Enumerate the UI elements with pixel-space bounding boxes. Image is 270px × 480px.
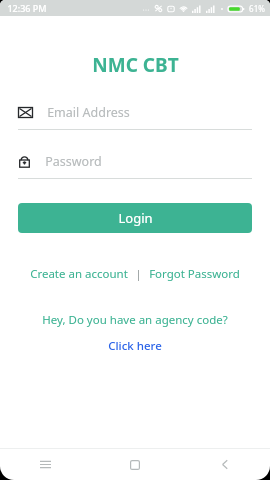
button[interactable]: Forgot Password (146, 264, 243, 284)
staticText: Create an account (30, 266, 128, 282)
staticText: 61% (249, 3, 265, 14)
staticText: | (135, 266, 142, 282)
button[interactable]: Home (90, 449, 180, 480)
staticText: Click here (108, 338, 162, 354)
staticText: Email Address (47, 104, 130, 121)
staticText: Forgot Password (149, 266, 240, 282)
staticText: Login (118, 209, 153, 227)
button[interactable]: Back (180, 449, 270, 480)
staticText: NMC CBT (92, 52, 179, 78)
button[interactable]: Menu (0, 449, 90, 480)
staticText: 12:36 PM (7, 2, 47, 14)
button[interactable]: Login (18, 203, 252, 233)
staticText: Hey, Do you have an agency code? (42, 312, 228, 328)
button[interactable]: Create an account (27, 264, 131, 284)
staticText: Password (45, 153, 102, 170)
button[interactable]: Click here (102, 336, 168, 356)
